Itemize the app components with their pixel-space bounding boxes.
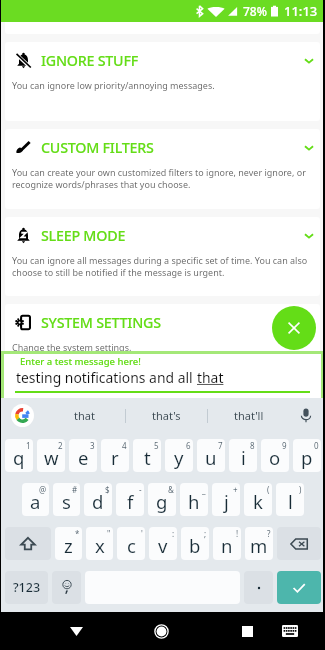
staticText: & (168, 484, 174, 495)
button[interactable]: Shift (5, 527, 51, 560)
button[interactable]: l (276, 483, 304, 516)
button[interactable]: SYSTEM SETTINGS (5, 304, 320, 383)
staticText: ( (267, 484, 270, 495)
button[interactable]: n (213, 527, 241, 560)
button[interactable]: q (5, 439, 33, 472)
button[interactable]: c (117, 527, 145, 560)
staticText: # (72, 484, 78, 495)
button[interactable]: Recents (217, 612, 277, 650)
staticText: 4 (122, 440, 127, 451)
staticText: p (301, 445, 313, 470)
staticText: t (144, 445, 151, 470)
button[interactable]: Voice input (289, 398, 323, 433)
button[interactable]: Back (46, 612, 106, 650)
button[interactable]: g (148, 483, 176, 516)
staticText: SLEEP MODE (41, 226, 126, 245)
staticText: 0 (314, 440, 319, 451)
staticText: * (75, 528, 80, 539)
staticText: ?123 (13, 579, 41, 596)
staticText: You can ignore all messages during a spe… (12, 254, 314, 279)
staticText: Change the system settings. (12, 341, 132, 353)
button[interactable]: e (69, 439, 97, 472)
button[interactable]: k (244, 483, 272, 516)
button[interactable]: t (133, 439, 161, 472)
staticText: 11:13 (284, 2, 318, 20)
button[interactable]: f (116, 483, 144, 516)
staticText: 8 (250, 440, 255, 451)
staticText: You can create your own customized filte… (12, 166, 314, 191)
staticText: z (64, 533, 73, 558)
staticText: 7 (218, 440, 223, 451)
staticText: 2 (58, 440, 63, 451)
staticText: $ (105, 484, 110, 495)
staticText: 78% (243, 3, 267, 19)
button[interactable]: Switch keyboard (272, 612, 308, 650)
button[interactable]: u (197, 439, 225, 472)
button[interactable]: j (212, 483, 240, 516)
button[interactable]: w (37, 439, 65, 472)
staticText: 9 (282, 440, 287, 451)
staticText: SYSTEM SETTINGS (41, 313, 161, 332)
button[interactable]: that'll (208, 398, 289, 433)
button[interactable]: ?123 (5, 571, 48, 604)
button[interactable]: that (43, 398, 125, 433)
staticText: g (156, 489, 168, 514)
staticText: 5 (154, 440, 159, 451)
staticText: d (92, 489, 104, 514)
staticText: r (111, 445, 119, 470)
staticText: " (107, 528, 111, 539)
button[interactable]: x (86, 527, 113, 560)
staticText: You can ignore low priority/annoying mes… (12, 79, 215, 91)
button[interactable] (244, 571, 273, 604)
staticText: - (139, 484, 142, 495)
staticText: m (250, 533, 268, 558)
button[interactable]: IGNORE STUFF (5, 42, 320, 121)
button[interactable]: Backspace (277, 527, 321, 560)
button[interactable]: SLEEP MODE (5, 217, 320, 296)
button[interactable]: z (55, 527, 82, 560)
staticText: CUSTOM FILTERS (41, 138, 154, 157)
staticText: ? (267, 528, 271, 539)
button[interactable]: h (180, 483, 208, 516)
staticText: ) (299, 484, 302, 495)
staticText: 1 (26, 440, 31, 451)
button[interactable]: Google (1, 398, 43, 433)
button[interactable]: CUSTOM FILTERS (5, 129, 320, 209)
staticText: that (74, 408, 95, 423)
button[interactable]: m (245, 527, 273, 560)
staticText: n (221, 533, 233, 558)
button[interactable]: v (149, 527, 177, 560)
staticText: ! (236, 528, 239, 539)
button[interactable]: b (181, 527, 209, 560)
staticText: l (288, 489, 293, 514)
button[interactable]: p (293, 439, 321, 472)
staticText: testing notifications and all (16, 368, 197, 387)
staticText: IGNORE STUFF (41, 51, 139, 70)
staticText: that (197, 368, 224, 387)
button[interactable]: y (165, 439, 193, 472)
staticText: v (158, 533, 168, 558)
staticText: that's (152, 408, 181, 423)
button[interactable]: r (101, 439, 129, 472)
button[interactable]: that's (126, 398, 207, 433)
staticText: a (30, 489, 41, 514)
button[interactable]: s (53, 483, 80, 516)
button[interactable]: a (22, 483, 49, 516)
button[interactable]: Enter (277, 571, 321, 604)
staticText: o (269, 445, 281, 470)
staticText: 3 (90, 440, 95, 451)
button[interactable]: Emoji (52, 571, 81, 604)
staticText: w (44, 445, 59, 470)
button[interactable]: Close (272, 306, 316, 350)
staticText: f (127, 489, 134, 514)
button[interactable]: i (229, 439, 257, 472)
staticText: q (13, 445, 25, 470)
button[interactable]: Home (131, 612, 191, 650)
staticText: Enter a test message here! (20, 355, 141, 368)
staticText: : (172, 528, 175, 539)
button[interactable]: o (261, 439, 289, 472)
button[interactable]: d (84, 483, 112, 516)
staticText: j (224, 489, 229, 514)
staticText: s (62, 489, 71, 514)
